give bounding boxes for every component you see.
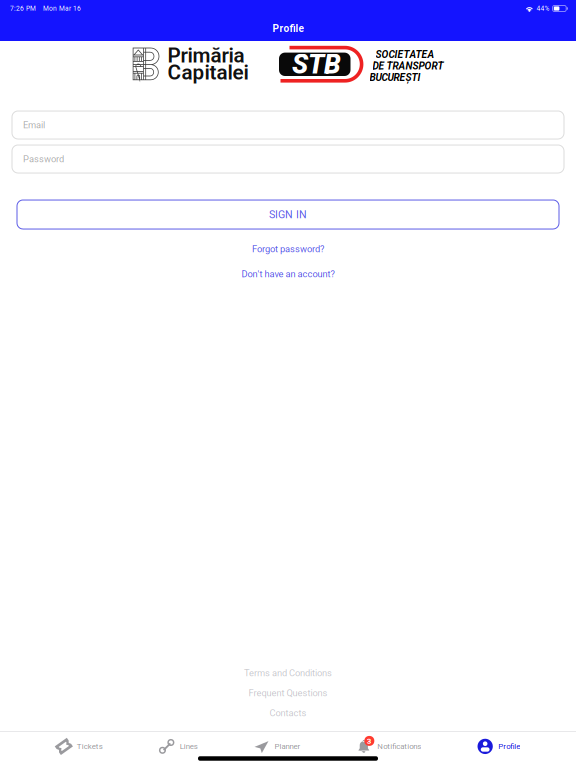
- button[interactable]: Email: [12, 111, 564, 139]
- staticText: Email: [23, 119, 45, 130]
- staticText: Forgot password?: [252, 243, 324, 254]
- staticText: Tickets: [77, 742, 103, 751]
- button[interactable]: Frequent Questions: [0, 683, 576, 703]
- staticText: 44%: [537, 5, 550, 12]
- staticText: DE TRANSPORT: [372, 60, 443, 72]
- staticText: SOCIETATEA: [375, 49, 434, 60]
- button[interactable]: Planner: [253, 732, 300, 756]
- staticText: BUCUREȘTI: [369, 72, 420, 83]
- button[interactable]: Contacts: [0, 703, 576, 723]
- button[interactable]: Forgot password?: [0, 241, 576, 257]
- staticText: SIGN IN: [269, 208, 307, 221]
- button[interactable]: Don't have an account?: [0, 266, 576, 282]
- staticText: Terms and Conditions: [244, 667, 332, 678]
- staticText: Profile: [498, 742, 520, 751]
- button[interactable]: Profile: [477, 732, 520, 756]
- staticText: Frequent Questions: [248, 687, 327, 698]
- staticText: Don't have an account?: [241, 268, 334, 279]
- staticText: Primăria: [167, 43, 244, 68]
- staticText: Password: [23, 153, 64, 164]
- staticText: 3: [367, 736, 372, 746]
- staticText: Lines: [180, 742, 198, 751]
- button[interactable]: Lines: [159, 732, 198, 756]
- button[interactable]: Terms and Conditions: [0, 663, 576, 683]
- button[interactable]: SIGN IN: [17, 200, 559, 229]
- staticText: 7:26 PM: [10, 5, 36, 12]
- staticText: STB: [292, 49, 341, 80]
- staticText: Mon Mar 16: [43, 5, 81, 12]
- staticText: Profile: [272, 23, 303, 34]
- staticText: Contacts: [269, 707, 306, 718]
- staticText: Capitalei: [167, 60, 248, 85]
- button[interactable]: 3: [356, 732, 421, 756]
- staticText: Notifications: [377, 742, 421, 751]
- staticText: Planner: [274, 742, 300, 751]
- button[interactable]: Password: [12, 145, 564, 173]
- button[interactable]: Tickets: [56, 732, 103, 756]
